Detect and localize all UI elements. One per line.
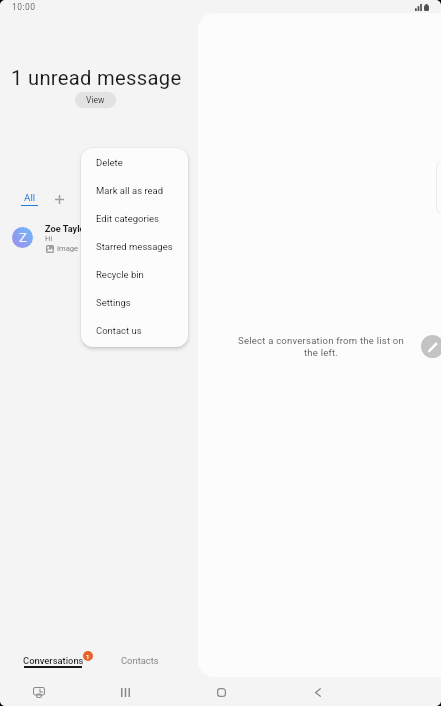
staticText: Settings bbox=[96, 297, 131, 308]
button[interactable]: Recycle bin bbox=[81, 260, 188, 288]
button[interactable]: Back bbox=[302, 678, 334, 706]
button[interactable]: Z bbox=[0, 219, 198, 257]
staticText: the left. bbox=[304, 347, 339, 358]
staticText: Starred messages bbox=[96, 241, 173, 252]
staticText: 1 unread message bbox=[11, 66, 182, 90]
staticText: Select a conversation from the list on bbox=[238, 335, 404, 346]
button[interactable]: Contact us bbox=[81, 316, 188, 344]
button[interactable]: Compose new message bbox=[421, 335, 441, 358]
staticText: Zoe Taylor bbox=[45, 223, 89, 234]
staticText: Hi bbox=[45, 234, 53, 243]
staticText: Edit categories bbox=[96, 213, 159, 224]
button[interactable]: Edit categories bbox=[81, 204, 188, 232]
staticText: Recycle bin bbox=[96, 269, 144, 280]
button[interactable]: Starred messages bbox=[81, 232, 188, 260]
button[interactable]: Delete bbox=[81, 148, 188, 176]
button[interactable]: Conversations bbox=[18, 650, 88, 672]
staticText: Contacts bbox=[121, 655, 159, 666]
button[interactable]: All bbox=[17, 188, 42, 210]
button[interactable]: Menu bbox=[109, 678, 141, 706]
staticText: Contact us bbox=[96, 325, 142, 336]
staticText: Mark all as read bbox=[96, 185, 164, 196]
staticText: Z bbox=[19, 230, 27, 245]
button[interactable]: Recents bbox=[23, 678, 55, 706]
button[interactable]: View bbox=[75, 92, 116, 108]
staticText: 10:00 bbox=[12, 2, 36, 12]
staticText: 1 bbox=[86, 653, 90, 660]
staticText: All bbox=[24, 192, 36, 203]
button[interactable]: Home bbox=[205, 678, 237, 706]
staticText: Image bbox=[57, 244, 79, 253]
button[interactable]: Mark all as read bbox=[81, 176, 188, 204]
button[interactable]: Settings bbox=[81, 288, 188, 316]
button[interactable]: Add conversation bbox=[50, 190, 68, 208]
staticText: View bbox=[86, 95, 105, 105]
staticText: Delete bbox=[96, 157, 123, 168]
button[interactable]: Contacts bbox=[115, 650, 163, 670]
staticText: Conversations bbox=[23, 655, 84, 666]
